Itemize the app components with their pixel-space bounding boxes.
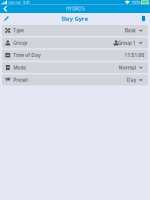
- button[interactable]: Back: [0, 5, 12, 13]
- staticText: Normal: [119, 64, 136, 71]
- button[interactable]: Edit: [0, 13, 13, 24]
- staticText: Time of Day: [13, 52, 40, 58]
- staticText: Day Gyre: [61, 14, 88, 23]
- staticText: Preset: [13, 77, 28, 83]
- staticText: 100%: [131, 0, 140, 5]
- button[interactable]: Mode: [2, 62, 148, 73]
- button[interactable]: Preset: [2, 74, 148, 85]
- button[interactable]: Type: [2, 25, 148, 36]
- staticText: Group: [13, 40, 27, 46]
- staticText: HYDROS: [66, 6, 84, 12]
- staticText: 11:51:00: [124, 52, 144, 58]
- staticText: Group 1: [118, 40, 136, 46]
- staticText: Day: [127, 77, 136, 83]
- staticText: 9:41: [23, 0, 30, 5]
- button[interactable]: Details: [137, 13, 150, 24]
- staticText: Type: [13, 27, 24, 34]
- staticText: Basic: [125, 27, 136, 34]
- staticText: Mode: [13, 64, 26, 71]
- button[interactable]: Group: [2, 37, 148, 48]
- button[interactable]: Time of Day: [2, 50, 148, 61]
- staticText: Carrier: [8, 0, 21, 5]
